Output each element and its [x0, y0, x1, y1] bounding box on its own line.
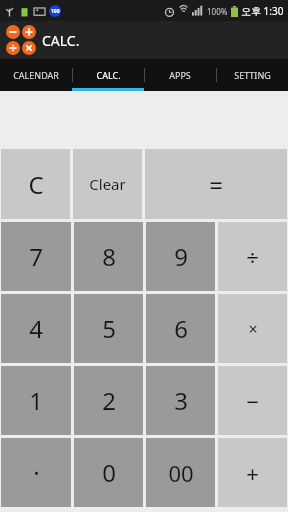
button[interactable]: 1: [1, 366, 71, 435]
staticText: 1: [29, 384, 43, 417]
staticText: −: [246, 386, 259, 416]
staticText: 4: [29, 312, 43, 345]
button[interactable]: 8: [74, 222, 143, 291]
button[interactable]: Clear: [73, 149, 142, 219]
button[interactable]: CALENDAR: [0, 59, 72, 91]
staticText: 오후 1:30: [241, 4, 284, 18]
staticText: 8: [102, 240, 116, 273]
staticText: 5: [102, 312, 116, 345]
staticText: ·: [33, 456, 40, 489]
button[interactable]: ÷: [218, 222, 287, 291]
button[interactable]: =: [145, 149, 287, 219]
staticText: 3: [174, 384, 188, 417]
staticText: 2: [102, 384, 116, 417]
button[interactable]: APPS: [144, 59, 216, 91]
staticText: CALENDAR: [13, 69, 59, 81]
button[interactable]: ·: [1, 438, 71, 507]
button[interactable]: +: [218, 438, 287, 507]
button[interactable]: ×: [218, 294, 287, 363]
button[interactable]: 6: [146, 294, 215, 363]
staticText: 7: [29, 240, 43, 273]
staticText: SETTING: [234, 69, 271, 81]
staticText: Clear: [89, 174, 126, 194]
button[interactable]: CALC.: [72, 59, 144, 91]
button[interactable]: 3: [146, 366, 215, 435]
button[interactable]: SETTING: [216, 59, 288, 91]
button[interactable]: 7: [1, 222, 71, 291]
button[interactable]: 9: [146, 222, 215, 291]
staticText: 0: [102, 456, 116, 489]
staticText: C: [28, 168, 44, 201]
staticText: 6: [174, 312, 188, 345]
staticText: ×: [248, 318, 258, 340]
button[interactable]: 5: [74, 294, 143, 363]
staticText: 9: [174, 240, 188, 273]
button[interactable]: C: [1, 149, 70, 219]
staticText: APPS: [169, 69, 191, 81]
button[interactable]: 2: [74, 366, 143, 435]
staticText: CALC.: [96, 69, 121, 81]
staticText: +: [246, 458, 259, 488]
staticText: CALC.: [42, 31, 80, 50]
button[interactable]: 00: [146, 438, 215, 507]
button[interactable]: −: [218, 366, 287, 435]
button[interactable]: 0: [74, 438, 143, 507]
staticText: 00: [168, 458, 194, 488]
button[interactable]: 4: [1, 294, 71, 363]
staticText: ÷: [246, 242, 259, 272]
staticText: 100%: [207, 6, 228, 17]
staticText: 100: [51, 8, 60, 15]
staticText: =: [209, 168, 223, 201]
